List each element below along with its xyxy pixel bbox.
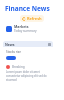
button[interactable]: Refresh [20,15,44,22]
button[interactable]: Markets [3,23,53,34]
staticText: Lorem ipsum dolor sit amet consectetur a… [6,70,50,82]
staticText: Breaking [12,65,25,69]
button[interactable] [6,56,16,60]
staticText: Stocks rise [6,50,21,54]
other: Share [48,43,51,46]
staticText: Markets [14,24,29,29]
staticText: News [5,42,15,47]
staticText: Finance News [5,4,50,13]
staticText: Refresh [27,16,42,21]
staticText: Today summary [14,29,37,33]
